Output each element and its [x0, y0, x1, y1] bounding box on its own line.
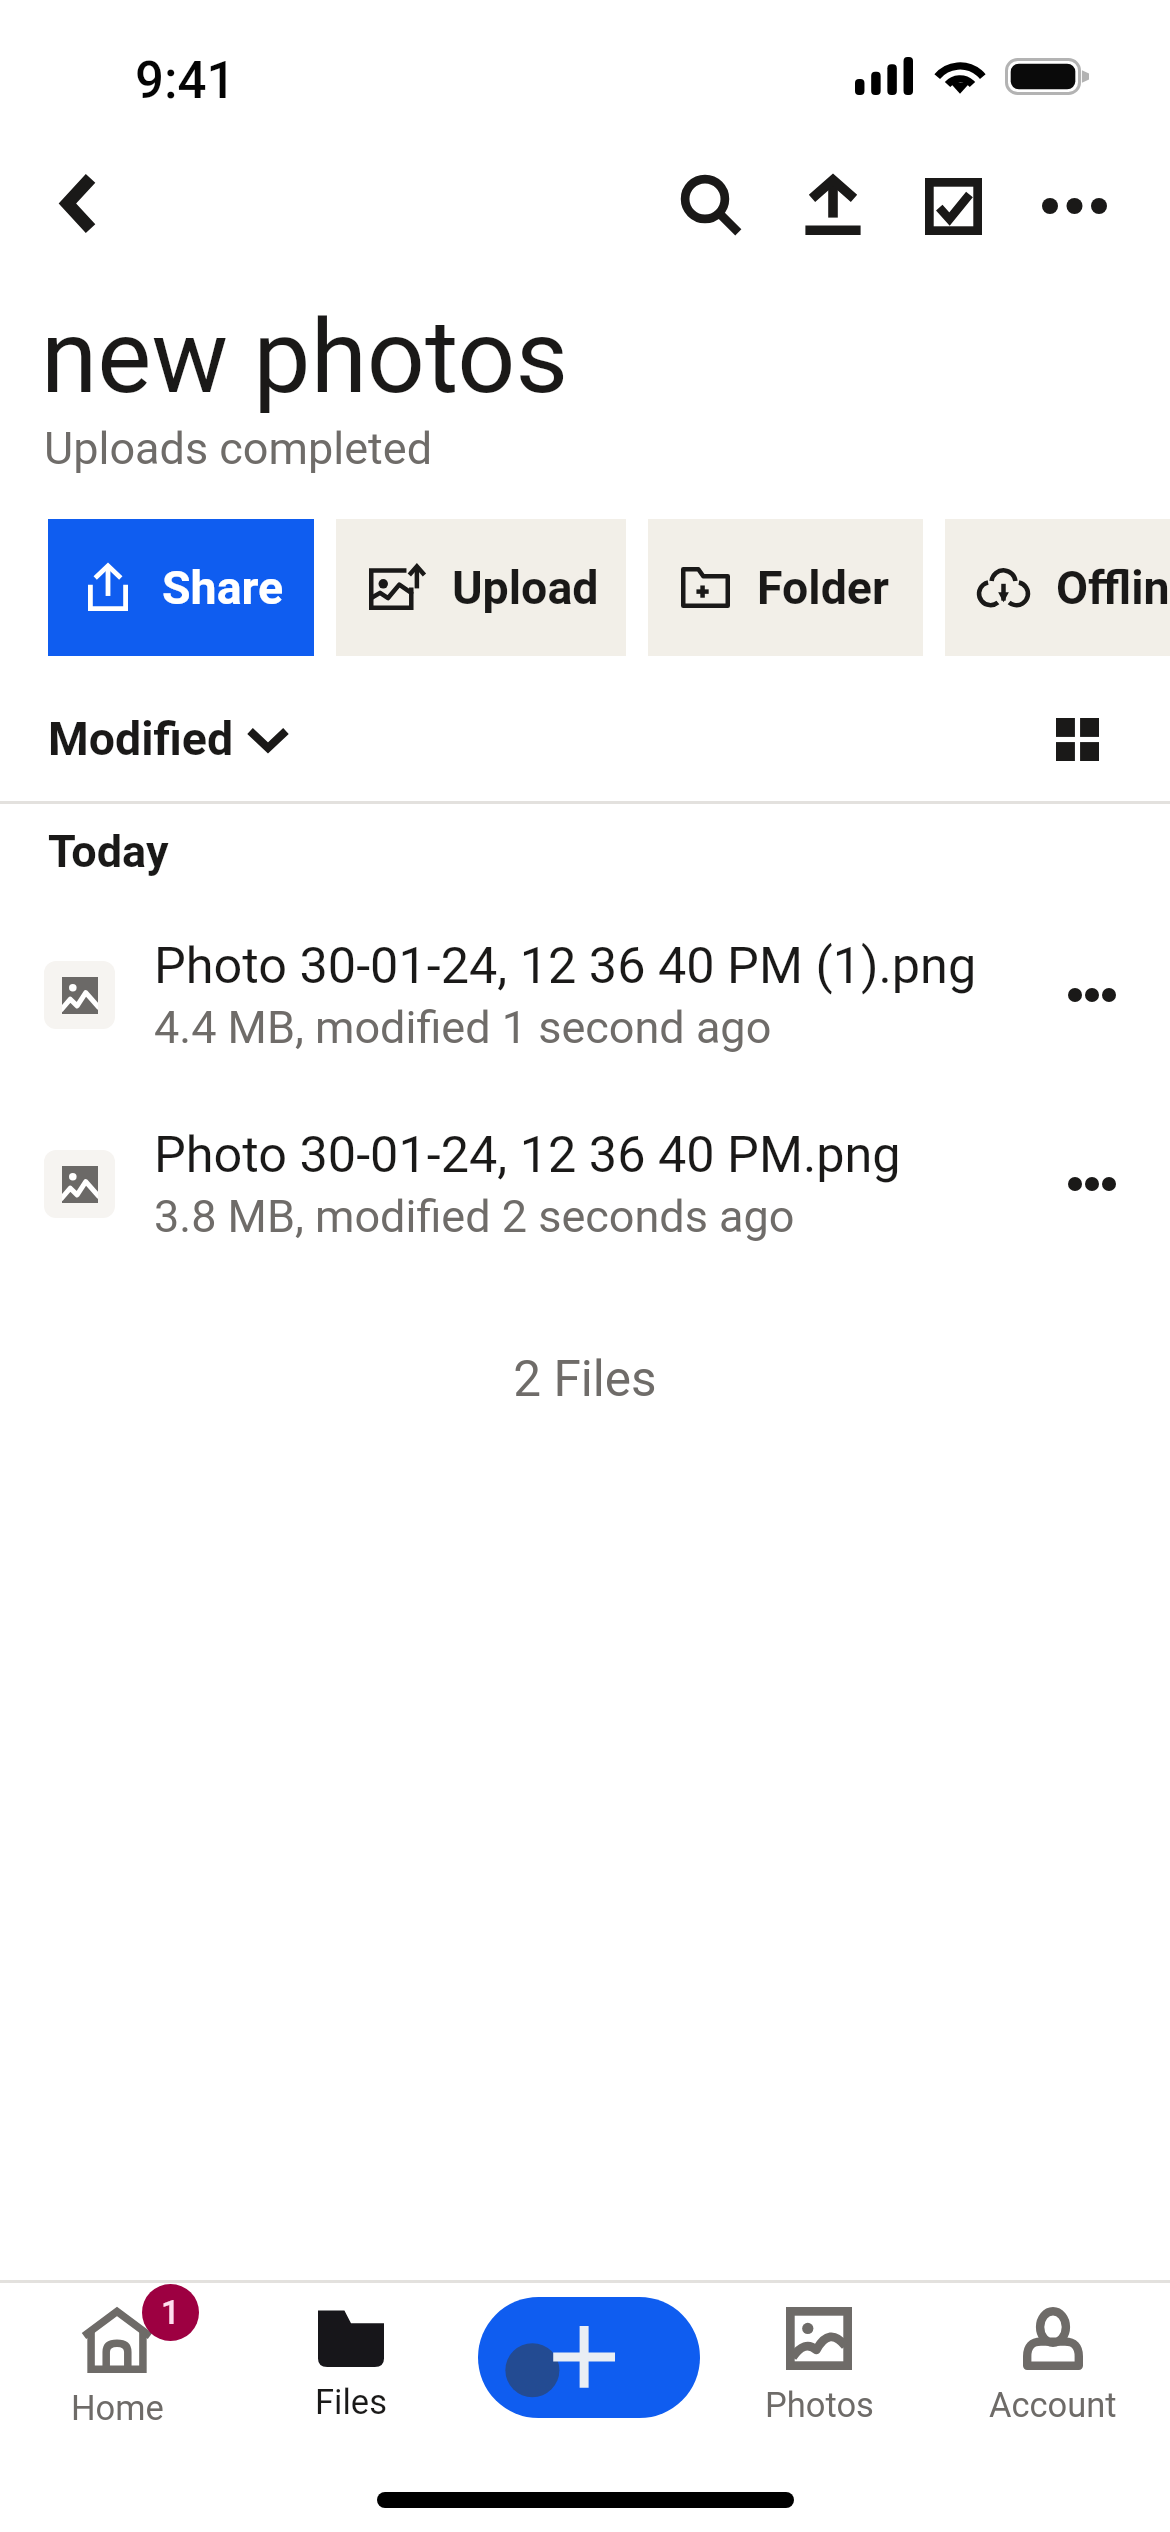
staticText: Modified [48, 712, 234, 766]
button[interactable]: Back [14, 139, 143, 268]
button[interactable]: Photo 30-01-24, 12 36 40 PM.png [0, 1089, 1170, 1278]
button[interactable]: Photos [702, 2295, 936, 2425]
staticText: Uploads completed [44, 422, 433, 475]
staticText: 1 [161, 2293, 180, 2332]
button[interactable]: Account [936, 2295, 1170, 2425]
staticText: 3.8 MB, modified 2 seconds ago [154, 1190, 795, 1243]
button[interactable]: Offline [945, 519, 1170, 656]
staticText: Home [71, 2388, 164, 2428]
button[interactable]: Upload [772, 146, 893, 266]
staticText: Upload [452, 561, 599, 615]
button[interactable]: Upload [336, 519, 626, 656]
staticText: Account [989, 2385, 1117, 2425]
button[interactable]: Create new [478, 2297, 700, 2418]
staticText: Files [315, 2382, 387, 2422]
staticText: Photos [765, 2385, 874, 2425]
button[interactable]: More options [1020, 1094, 1164, 1274]
staticText: Photo 30-01-24, 12 36 40 PM (1).png [154, 936, 977, 995]
button[interactable]: More options [1014, 146, 1135, 266]
staticText: Today [48, 825, 169, 878]
button[interactable]: Files [234, 2295, 468, 2422]
staticText: 4.4 MB, modified 1 second ago [154, 1001, 772, 1054]
button[interactable]: More options [1020, 905, 1164, 1085]
staticText: Folder [757, 561, 889, 615]
staticText: new photos [41, 297, 569, 417]
staticText: 2 Files [0, 1350, 1170, 1408]
button[interactable]: Search [651, 146, 772, 266]
button[interactable]: Folder [648, 519, 923, 656]
staticText: Share [162, 561, 284, 615]
button[interactable]: 1 [0, 2295, 234, 2428]
staticText: Offline [1056, 561, 1170, 615]
button[interactable]: Grid view [1017, 679, 1137, 799]
staticText: Photo 30-01-24, 12 36 40 PM.png [154, 1125, 901, 1184]
button[interactable]: Select [893, 146, 1014, 266]
button[interactable]: Modified [30, 700, 308, 778]
staticText: 9:41 [135, 51, 236, 111]
button[interactable]: Share [48, 519, 314, 656]
button[interactable]: Photo 30-01-24, 12 36 40 PM (1).png [0, 900, 1170, 1089]
